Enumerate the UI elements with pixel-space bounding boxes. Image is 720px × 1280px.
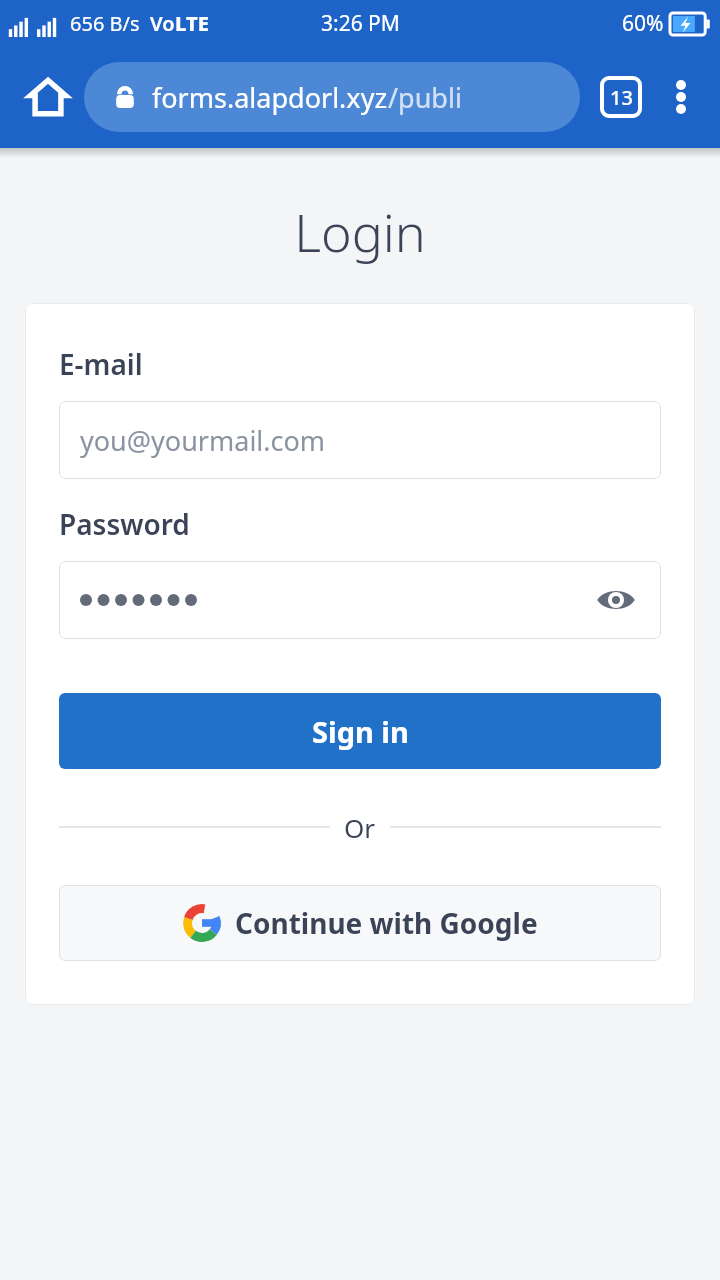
staticText: 60% xyxy=(622,9,664,38)
staticText: Vo xyxy=(150,10,175,37)
staticText: /publi xyxy=(388,79,462,116)
staticText: 13 xyxy=(610,84,633,111)
button[interactable]: Continue with Google xyxy=(59,885,661,961)
button[interactable]: Home xyxy=(16,65,80,129)
button[interactable]: forms.alapdorl.xyz xyxy=(84,62,580,132)
staticText: LTE xyxy=(175,10,209,37)
button[interactable]: Show password xyxy=(571,562,661,638)
staticText: Login xyxy=(0,196,720,267)
staticText: forms.alapdorl.xyz xyxy=(152,79,388,116)
button[interactable]: Sign in xyxy=(59,693,661,769)
staticText: Continue with Google xyxy=(235,904,538,942)
button[interactable]: Tabs, 13 open xyxy=(590,66,652,128)
staticText: you@yourmail.com xyxy=(80,422,326,459)
button[interactable]: More options xyxy=(652,68,710,126)
staticText: 3:26 PM xyxy=(321,9,400,38)
staticText: Or xyxy=(344,810,376,845)
button[interactable]: Show password xyxy=(59,561,661,639)
staticText: E-mail xyxy=(59,345,143,383)
button[interactable]: you@yourmail.com xyxy=(59,401,661,479)
staticText: 656 B/s xyxy=(70,10,140,37)
staticText: Sign in xyxy=(312,712,409,751)
staticText: Password xyxy=(59,505,190,543)
